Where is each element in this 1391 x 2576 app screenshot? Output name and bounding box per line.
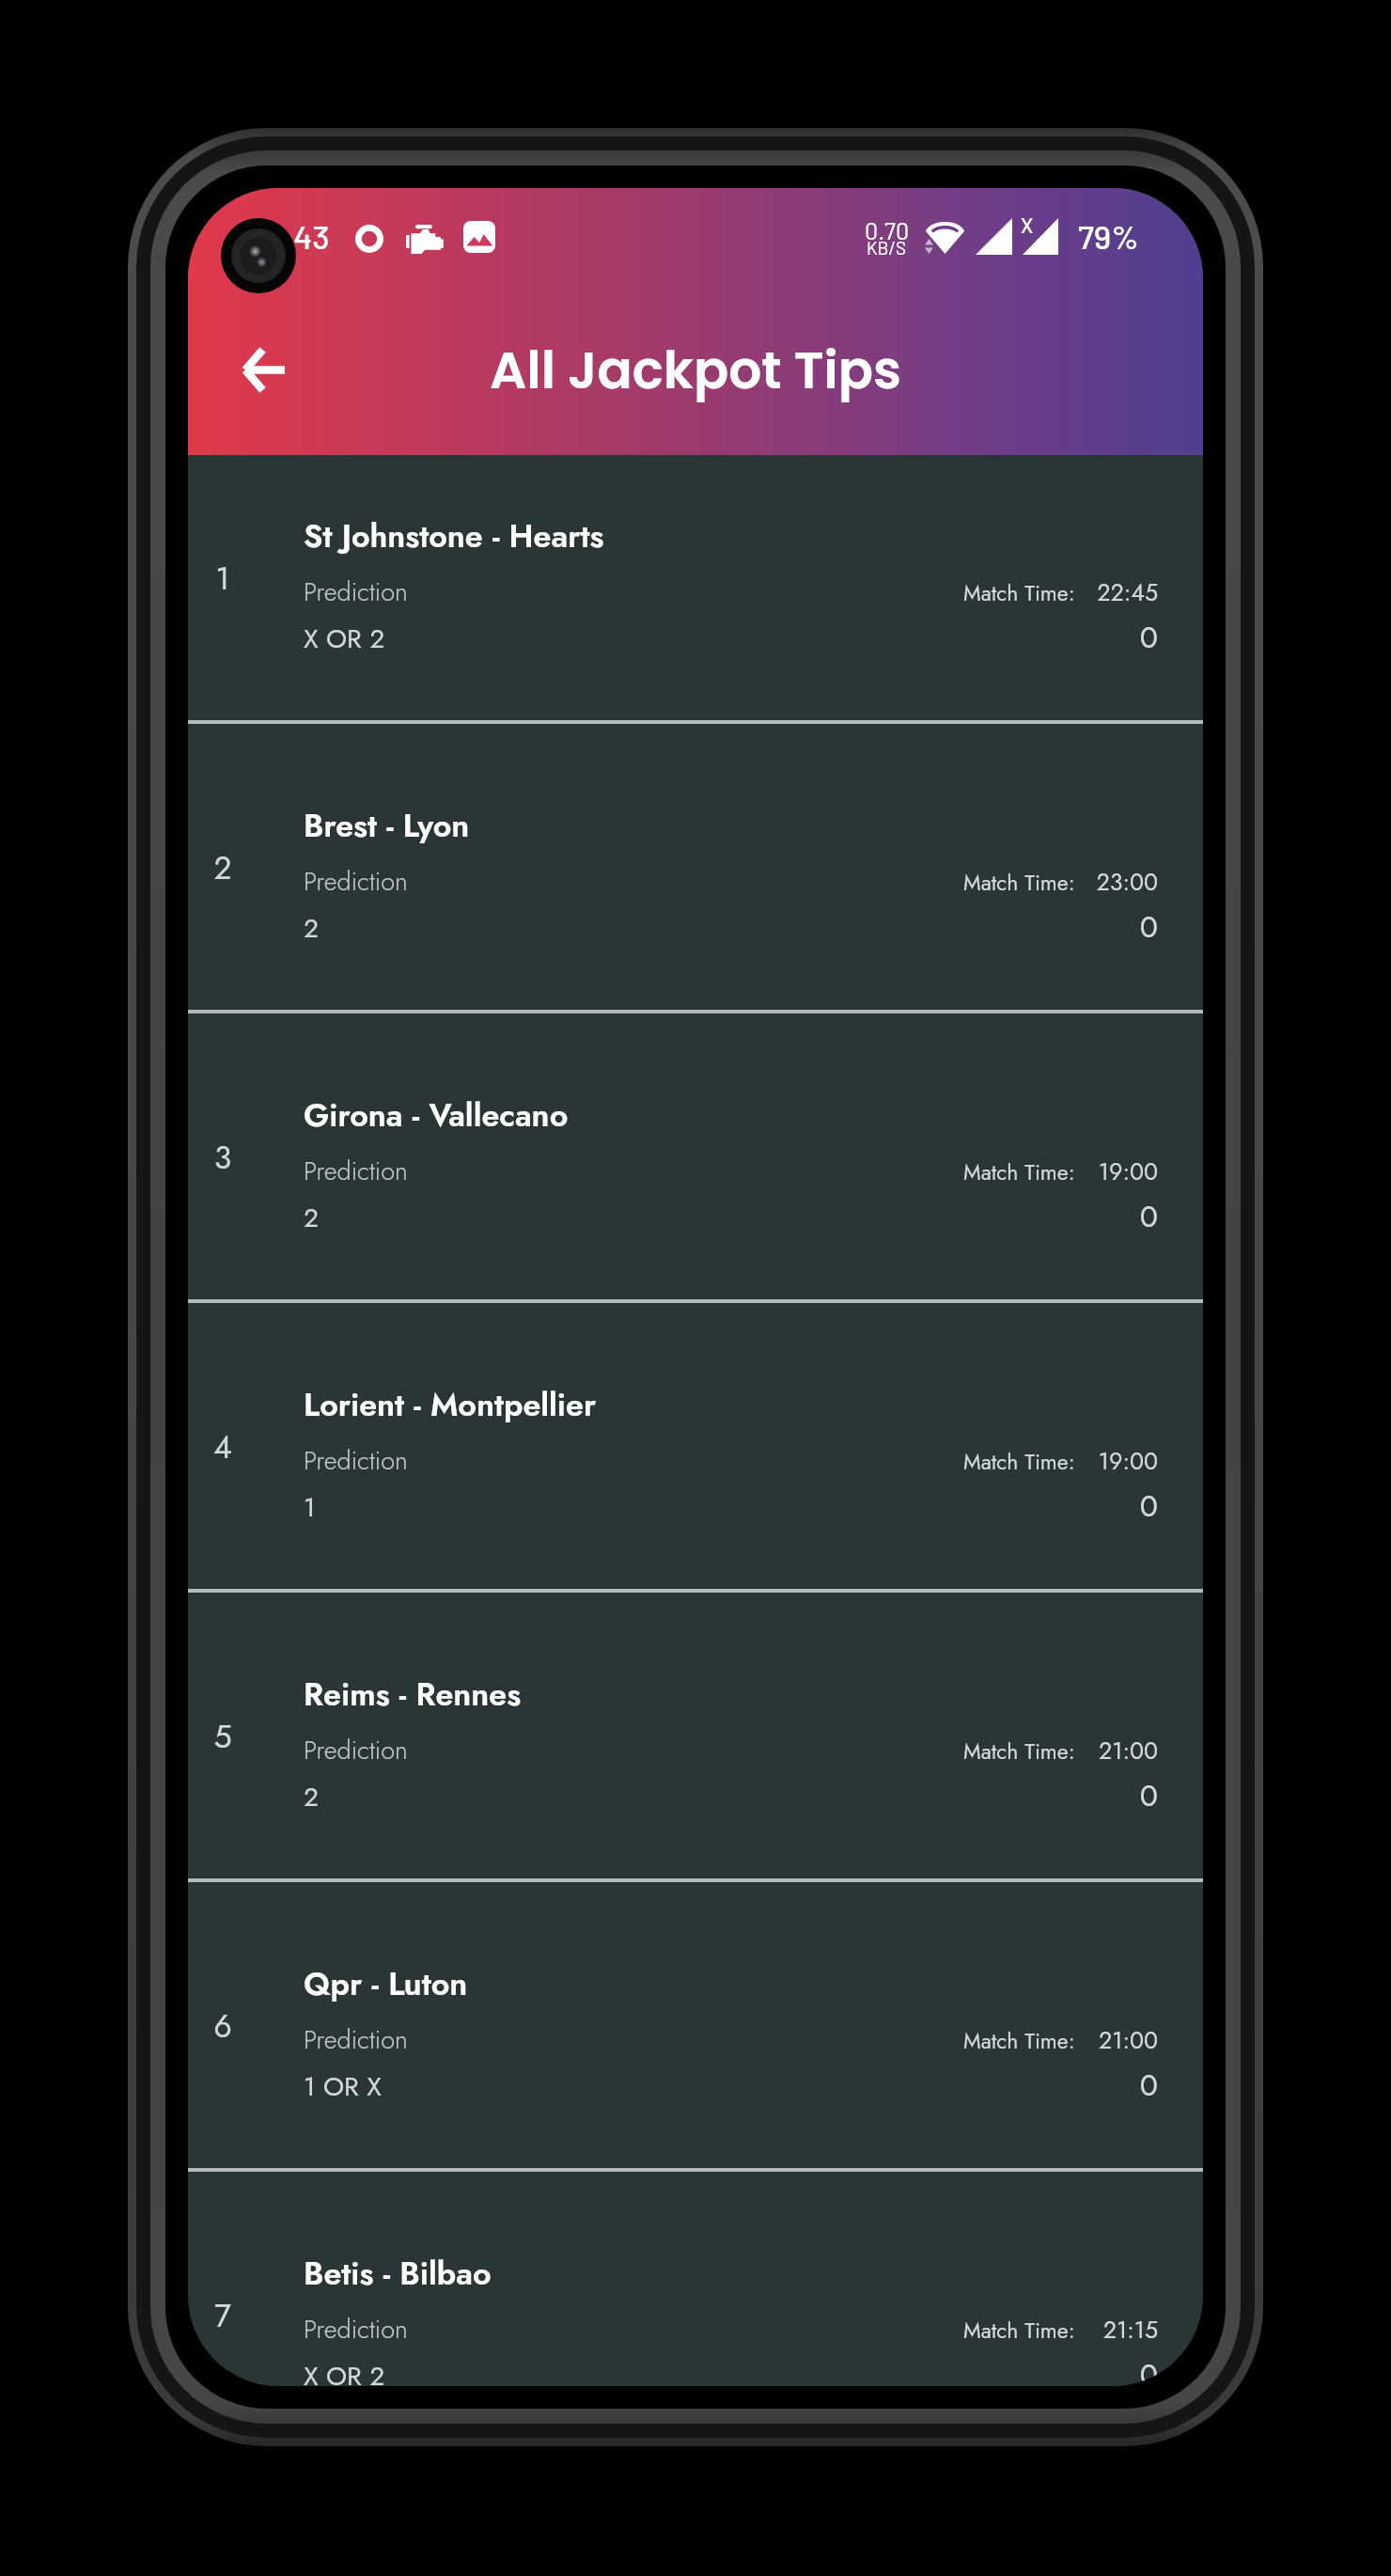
button[interactable]: 5	[188, 1591, 1203, 1880]
button[interactable]: 6	[188, 1880, 1203, 2170]
button[interactable]: 2	[188, 722, 1203, 1012]
staticText: 79%	[1078, 216, 1139, 256]
staticText: 0.70	[865, 216, 910, 244]
staticText: 21:15	[1073, 2313, 1158, 2347]
staticText: Prediction	[304, 573, 408, 610]
staticText: 22:45	[1073, 575, 1158, 609]
staticText: 1	[188, 556, 258, 602]
staticText: 21:00	[1073, 2023, 1158, 2057]
staticText: 7	[188, 2293, 258, 2339]
button[interactable]: 1	[188, 432, 1203, 722]
staticText: 2	[304, 1778, 319, 1815]
staticText: :43	[282, 216, 330, 256]
staticText: 2	[188, 845, 258, 891]
staticText: Match Time:	[963, 1156, 1075, 1187]
staticText: Match Time:	[963, 577, 1075, 608]
staticText: St Johnstone - Hearts	[304, 513, 604, 559]
staticText: X OR 2	[304, 620, 385, 657]
staticText: 0	[1102, 1484, 1158, 1528]
staticText: Brest - Lyon	[304, 803, 470, 849]
staticText: 6	[188, 2003, 258, 2050]
staticText: 3	[188, 1135, 258, 1181]
staticText: KB/S	[867, 237, 907, 259]
staticText: 0	[1102, 2064, 1158, 2107]
staticText: 2	[304, 1199, 319, 1236]
staticText: Match Time:	[963, 1736, 1075, 1767]
staticText: X	[1021, 212, 1034, 237]
staticText: 23:00	[1073, 865, 1158, 899]
button[interactable]: 3	[188, 1012, 1203, 1301]
staticText: Lorient - Montpellier	[304, 1382, 597, 1428]
staticText: Prediction	[304, 1732, 408, 1768]
staticText: Match Time:	[963, 867, 1075, 898]
staticText: 0	[1102, 905, 1158, 949]
staticText: 19:00	[1073, 1154, 1158, 1188]
button[interactable]: Back	[214, 321, 312, 418]
staticText: 21:00	[1073, 1734, 1158, 1767]
staticText: Prediction	[304, 1153, 408, 1189]
button[interactable]: 4	[188, 1301, 1203, 1591]
staticText: Reims - Rennes	[304, 1672, 522, 1718]
staticText: 0	[1102, 2353, 1158, 2386]
staticText: Match Time:	[963, 2315, 1075, 2346]
staticText: 19:00	[1073, 1444, 1158, 1478]
staticText: 1 OR X	[304, 2067, 382, 2105]
button[interactable]: 7	[188, 2170, 1203, 2386]
staticText: Prediction	[304, 863, 408, 900]
staticText: 0	[1102, 1774, 1158, 1817]
staticText: Girona - Vallecano	[304, 1092, 569, 1139]
staticText: 1	[304, 1488, 316, 1526]
staticText: 0	[1102, 616, 1158, 659]
staticText: 2	[304, 909, 319, 947]
staticText: 5	[188, 1714, 258, 1760]
staticText: All Jackpot Tips	[188, 334, 1203, 406]
staticText: X OR 2	[304, 2357, 385, 2386]
staticText: Match Time:	[963, 1446, 1075, 1477]
staticText: Prediction	[304, 2311, 408, 2348]
staticText: 0	[1102, 1195, 1158, 1238]
staticText: Qpr - Luton	[304, 1961, 468, 2007]
staticText: Betis - Bilbao	[304, 2251, 492, 2297]
staticText: Match Time:	[963, 2025, 1075, 2056]
staticText: 4	[188, 1424, 258, 1470]
staticText: Prediction	[304, 2021, 408, 2058]
staticText: Prediction	[304, 1442, 408, 1479]
